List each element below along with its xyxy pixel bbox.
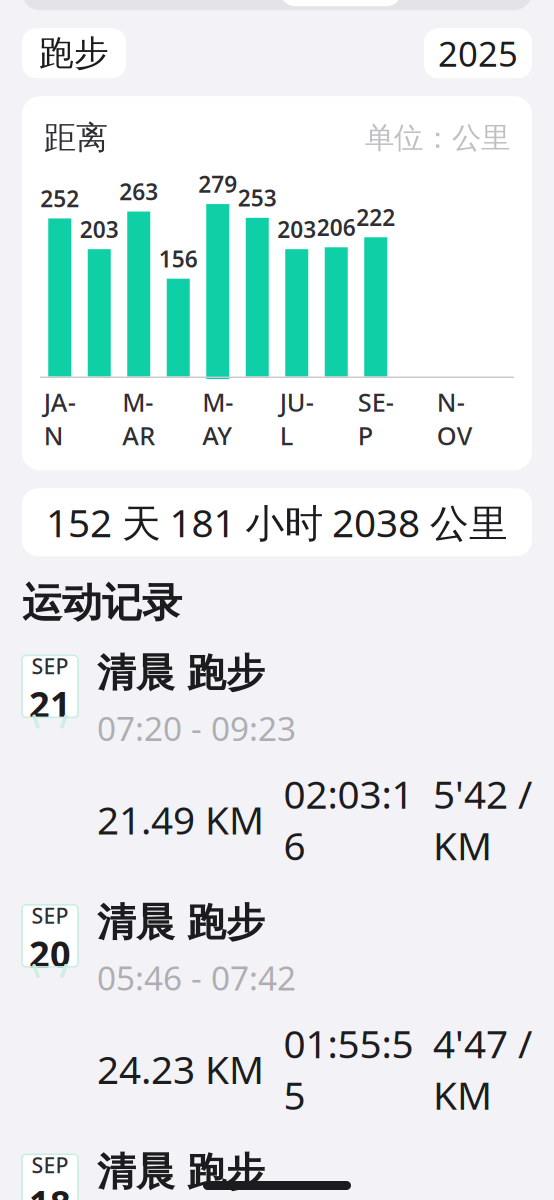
staticText: 263 [119, 176, 158, 206]
staticText: 02:03:16 [283, 768, 413, 871]
button[interactable]: 周 [22, 0, 149, 10]
staticText: 203 [80, 214, 119, 244]
staticText: 203 [277, 214, 316, 244]
staticText: NOV [437, 385, 473, 452]
staticText: 156 [159, 244, 198, 274]
staticText: JUL [280, 385, 314, 452]
staticText: 21.49 KM [97, 794, 264, 845]
staticText: 4'47 /KM [433, 1018, 532, 1120]
staticText: 距离 [44, 118, 108, 157]
staticText: 206 [317, 212, 356, 242]
button[interactable]: 总 [404, 0, 532, 10]
staticText: 清晨 跑步 [97, 899, 265, 946]
staticText: 5'42 /KM [433, 768, 532, 871]
staticText: 05:46 - 07:42 [97, 955, 296, 1000]
staticText: 222 [356, 202, 395, 232]
staticText: 单位：公里 [365, 120, 510, 156]
staticText: 20 [29, 930, 71, 977]
staticText: 181 小时 [169, 497, 323, 548]
staticText: SEP [358, 385, 394, 452]
staticText: 21 [29, 680, 71, 728]
staticText: 2038 公里 [332, 497, 508, 548]
button[interactable]: SEP [22, 649, 532, 871]
staticText: MAY [202, 385, 233, 452]
staticText: 2025 [438, 30, 518, 76]
staticText: 18 [29, 1179, 71, 1200]
staticText: SEP [31, 1151, 68, 1179]
staticText: SEP [31, 652, 68, 680]
staticText: 252 [40, 183, 79, 213]
staticText: 运动记录 [22, 578, 182, 627]
staticText: 清晨 跑步 [97, 1148, 265, 1196]
button[interactable]: SEP [22, 899, 532, 1120]
staticText: 279 [198, 169, 237, 199]
staticText: JAN [44, 385, 76, 452]
button[interactable]: 跑步 [22, 28, 126, 78]
staticText: 24.23 KM [97, 1043, 264, 1095]
staticText: SEP [31, 901, 68, 930]
staticText: 253 [238, 183, 277, 213]
button[interactable]: 年 [277, 0, 404, 10]
staticText: 152 天 [46, 497, 161, 548]
staticText: MAR [122, 385, 155, 452]
staticText: 清晨 跑步 [97, 649, 265, 697]
button[interactable]: SEP [22, 1148, 532, 1200]
staticText: 01:55:55 [283, 1018, 413, 1120]
button[interactable]: 2025 [424, 28, 532, 78]
staticText: 跑步 [39, 32, 109, 74]
staticText: 07:20 - 09:23 [97, 706, 296, 750]
